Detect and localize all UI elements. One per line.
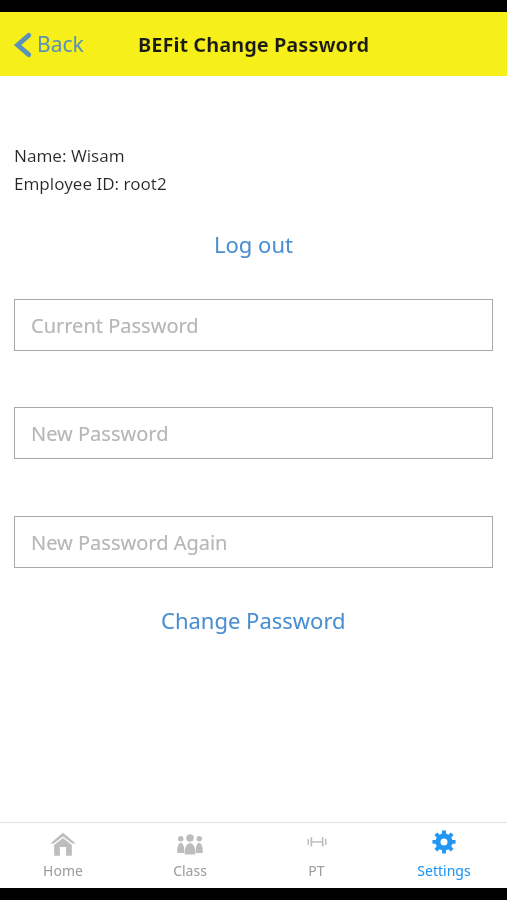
staticText: PT (308, 861, 325, 880)
staticText: Log out (214, 229, 293, 259)
staticText: New Password (31, 420, 169, 447)
button[interactable]: Back (10, 24, 88, 65)
button[interactable]: PT (253, 825, 380, 886)
staticText: New Password Again (31, 529, 228, 556)
button[interactable]: New Password Again (14, 516, 493, 568)
other: PT (304, 831, 330, 857)
staticText: Home (43, 861, 83, 880)
staticText: Settings (417, 861, 471, 880)
button[interactable]: Home (0, 825, 126, 886)
button[interactable]: Change Password (145, 598, 362, 642)
button[interactable]: Class (126, 825, 253, 886)
other: Class (177, 831, 203, 857)
button[interactable]: New Password (14, 407, 493, 459)
button[interactable]: Log out (200, 223, 307, 265)
staticText: BEFit Change Password (138, 31, 370, 58)
staticText: Current Password (31, 312, 199, 339)
other: Settings (431, 831, 457, 857)
button[interactable]: Settings (380, 825, 507, 886)
staticText: Class (173, 861, 207, 880)
staticText: Back (37, 30, 84, 59)
staticText: Change Password (161, 605, 346, 635)
staticText: Employee ID: root2 (14, 172, 167, 195)
button[interactable]: Current Password (14, 299, 493, 351)
staticText: Name: Wisam (14, 144, 125, 167)
other: Home (50, 831, 76, 857)
